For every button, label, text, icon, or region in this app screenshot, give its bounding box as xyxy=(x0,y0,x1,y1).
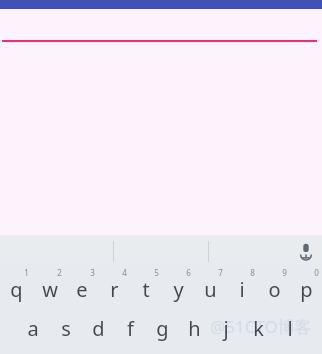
button[interactable]: 2 xyxy=(33,266,66,310)
staticText: @51CTO博客 xyxy=(210,315,312,338)
button[interactable]: 1 xyxy=(0,266,33,310)
button[interactable]: Voice input xyxy=(289,235,322,266)
staticText: 2 xyxy=(57,267,62,278)
button[interactable]: 0 xyxy=(290,266,322,310)
staticText: 3 xyxy=(90,267,95,278)
button[interactable]: 4 xyxy=(98,266,130,310)
staticText: 1 xyxy=(24,267,29,278)
staticText: h xyxy=(188,315,201,342)
staticText: p xyxy=(300,276,313,303)
staticText: r xyxy=(110,276,119,303)
staticText: o xyxy=(268,276,281,303)
button[interactable]: k xyxy=(242,310,274,354)
button[interactable]: 8 xyxy=(226,266,258,310)
staticText: g xyxy=(156,315,169,342)
staticText: 5 xyxy=(154,267,159,278)
button[interactable]: h xyxy=(178,310,210,354)
staticText: f xyxy=(127,315,134,342)
button[interactable]: d xyxy=(82,310,114,354)
staticText: a xyxy=(27,315,39,342)
button[interactable]: g xyxy=(146,310,178,354)
staticText: 9 xyxy=(282,267,287,278)
button[interactable]: 7 xyxy=(194,266,226,310)
staticText: k xyxy=(253,315,264,342)
button[interactable]: 9 xyxy=(258,266,290,310)
button[interactable]: 3 xyxy=(66,266,98,310)
staticText: j xyxy=(223,315,229,342)
staticText: y xyxy=(173,276,184,303)
button[interactable]: l xyxy=(274,310,306,354)
staticText: t xyxy=(142,276,150,303)
staticText: q xyxy=(10,276,23,303)
button[interactable]: 6 xyxy=(162,266,194,310)
staticText: 7 xyxy=(218,267,223,278)
staticText: w xyxy=(42,276,58,303)
staticText: 0 xyxy=(314,267,319,278)
staticText: i xyxy=(239,276,245,303)
button[interactable]: a xyxy=(16,310,49,354)
staticText: 6 xyxy=(186,267,191,278)
button[interactable]: s xyxy=(49,310,82,354)
button[interactable]: 5 xyxy=(130,266,162,310)
button[interactable]: f xyxy=(114,310,146,354)
staticText: d xyxy=(92,315,105,342)
staticText: 8 xyxy=(250,267,255,278)
button[interactable]: j xyxy=(210,310,242,354)
staticText: l xyxy=(287,315,293,342)
staticText: e xyxy=(76,276,88,303)
staticText: 4 xyxy=(122,267,127,278)
staticText: u xyxy=(204,276,217,303)
staticText: s xyxy=(61,315,71,342)
